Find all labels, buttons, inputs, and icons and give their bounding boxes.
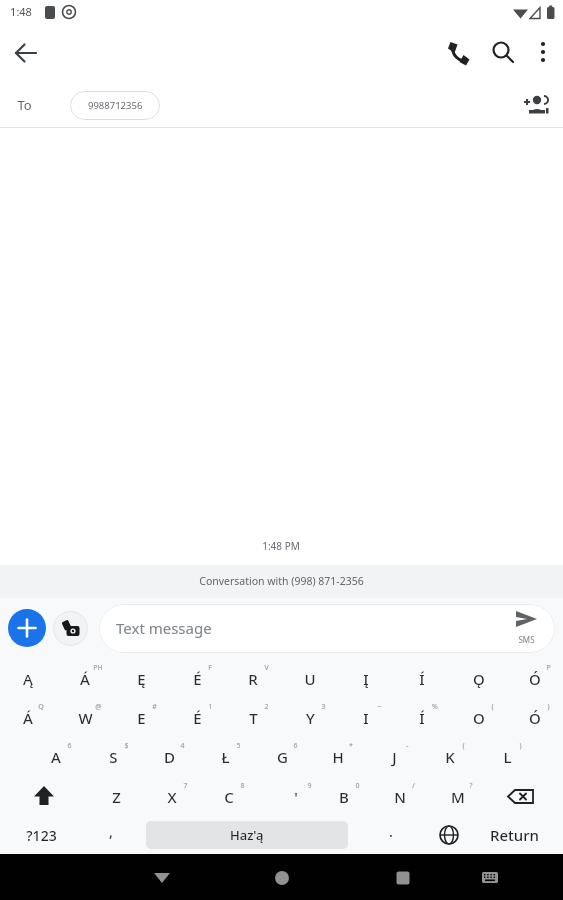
button[interactable] bbox=[394, 659, 450, 698]
button[interactable] bbox=[431, 817, 467, 853]
button[interactable] bbox=[0, 659, 56, 698]
staticText: @ bbox=[95, 702, 102, 712]
staticText: G bbox=[277, 747, 288, 767]
button[interactable] bbox=[270, 777, 322, 816]
staticText: 1:48 bbox=[10, 4, 32, 19]
staticText: - bbox=[406, 741, 409, 751]
staticText: P bbox=[546, 663, 551, 673]
button[interactable] bbox=[451, 659, 507, 698]
button[interactable]: Text message bbox=[99, 604, 555, 653]
button[interactable] bbox=[8, 609, 46, 647]
button[interactable] bbox=[28, 737, 84, 776]
staticText: Ę bbox=[137, 669, 146, 689]
button[interactable] bbox=[225, 659, 281, 698]
button[interactable] bbox=[169, 698, 225, 737]
button[interactable] bbox=[282, 698, 338, 737]
button[interactable] bbox=[472, 860, 508, 894]
button[interactable] bbox=[422, 737, 478, 776]
button[interactable] bbox=[113, 698, 169, 737]
staticText: I bbox=[363, 708, 369, 728]
staticText: To bbox=[17, 96, 32, 114]
button[interactable] bbox=[383, 858, 423, 896]
button[interactable] bbox=[483, 32, 523, 72]
staticText: 7 bbox=[183, 781, 188, 791]
staticText: 0 bbox=[355, 781, 360, 791]
staticText: H bbox=[332, 747, 344, 767]
staticText: T bbox=[249, 708, 258, 728]
staticText: ?123 bbox=[26, 826, 57, 845]
staticText: D bbox=[164, 747, 175, 767]
staticText: N bbox=[394, 787, 406, 807]
button[interactable] bbox=[374, 777, 426, 816]
button[interactable] bbox=[57, 659, 113, 698]
button[interactable] bbox=[366, 737, 422, 776]
button[interactable] bbox=[85, 737, 141, 776]
button[interactable] bbox=[437, 32, 477, 72]
button[interactable] bbox=[432, 777, 484, 816]
button[interactable] bbox=[225, 698, 281, 737]
staticText: Q bbox=[38, 702, 44, 712]
staticText: 5 bbox=[236, 741, 241, 751]
staticText: 2 bbox=[264, 702, 269, 712]
button[interactable]: 9988712356 bbox=[70, 91, 160, 120]
button[interactable] bbox=[338, 659, 394, 698]
staticText: 6 bbox=[67, 741, 72, 751]
button[interactable]: Haz'ą bbox=[146, 821, 348, 849]
button[interactable] bbox=[90, 777, 142, 816]
button[interactable] bbox=[318, 777, 370, 816]
button[interactable] bbox=[203, 777, 255, 816]
staticText: E bbox=[137, 708, 146, 728]
staticText: 1 bbox=[208, 702, 213, 712]
staticText: S bbox=[109, 747, 118, 767]
button[interactable] bbox=[451, 698, 507, 737]
button[interactable] bbox=[142, 858, 182, 896]
button[interactable] bbox=[16, 777, 72, 816]
button[interactable] bbox=[53, 611, 88, 646]
button[interactable] bbox=[394, 698, 450, 737]
staticText: Text message bbox=[116, 618, 212, 638]
staticText: % bbox=[432, 702, 438, 712]
staticText: U bbox=[304, 669, 316, 689]
staticText: Į bbox=[363, 669, 369, 689]
button[interactable] bbox=[527, 32, 559, 72]
button[interactable] bbox=[479, 737, 535, 776]
button[interactable] bbox=[113, 659, 169, 698]
button[interactable] bbox=[254, 737, 310, 776]
button[interactable] bbox=[6, 33, 46, 73]
button[interactable]: ?123 bbox=[0, 821, 121, 849]
staticText: # bbox=[152, 702, 157, 712]
button[interactable] bbox=[262, 858, 302, 896]
button[interactable] bbox=[507, 659, 563, 698]
button[interactable] bbox=[57, 698, 113, 737]
staticText: / bbox=[412, 781, 415, 791]
staticText: Í bbox=[419, 708, 425, 728]
button[interactable] bbox=[0, 698, 56, 737]
staticText: 4 bbox=[180, 741, 185, 751]
button[interactable] bbox=[507, 698, 563, 737]
staticText: R bbox=[248, 669, 258, 689]
staticText: Ó bbox=[529, 669, 541, 689]
button[interactable] bbox=[338, 698, 394, 737]
staticText: ? bbox=[469, 781, 473, 791]
staticText: X bbox=[167, 787, 177, 807]
button[interactable] bbox=[495, 777, 551, 816]
button[interactable] bbox=[517, 88, 553, 122]
button[interactable] bbox=[310, 737, 366, 776]
staticText: ~ bbox=[377, 702, 382, 712]
button[interactable] bbox=[169, 659, 225, 698]
button[interactable] bbox=[505, 606, 549, 650]
staticText: Conversation with (998) 871-2356 bbox=[199, 574, 364, 588]
staticText: W bbox=[78, 708, 93, 728]
staticText: 9 bbox=[307, 781, 312, 791]
button[interactable]: Return bbox=[434, 821, 563, 849]
button[interactable] bbox=[197, 737, 253, 776]
button[interactable] bbox=[146, 777, 198, 816]
button[interactable]: , bbox=[31, 817, 191, 845]
staticText: O bbox=[473, 708, 485, 728]
button[interactable] bbox=[282, 659, 338, 698]
staticText: Á bbox=[80, 669, 90, 689]
button[interactable] bbox=[141, 737, 197, 776]
staticText: Á bbox=[23, 708, 33, 728]
button[interactable]: . bbox=[311, 817, 471, 845]
staticText: ) bbox=[547, 702, 550, 712]
